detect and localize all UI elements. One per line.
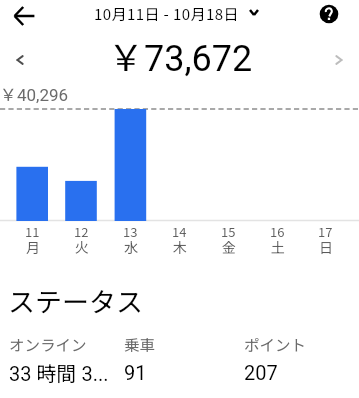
button[interactable]: 10月11日 - 10月18日 bbox=[94, 3, 257, 25]
button[interactable]: 12 bbox=[57, 222, 105, 261]
staticText: 14 bbox=[172, 222, 187, 241]
staticText: 10月11日 - 10月18日 bbox=[94, 3, 239, 25]
staticText: 91 bbox=[124, 361, 147, 384]
staticText: 33 時間 3... bbox=[9, 358, 109, 387]
staticText: 207 bbox=[244, 361, 278, 384]
staticText: 日 bbox=[319, 237, 333, 257]
staticText: ステータス bbox=[8, 281, 143, 320]
button[interactable]: オンライン bbox=[9, 333, 124, 390]
button[interactable]: Back bbox=[4, 0, 44, 36]
staticText: 土 bbox=[271, 237, 285, 257]
staticText: ￥40,296 bbox=[0, 81, 69, 106]
button[interactable]: ポイント bbox=[244, 333, 307, 384]
staticText: 月 bbox=[26, 237, 40, 257]
staticText: 16 bbox=[270, 222, 285, 241]
staticText: 金 bbox=[222, 237, 236, 257]
staticText: 15 bbox=[221, 222, 236, 241]
button[interactable]: 11 bbox=[8, 222, 56, 261]
staticText: オンライン bbox=[9, 333, 87, 355]
staticText: 12 bbox=[74, 222, 89, 241]
button[interactable]: 14 bbox=[155, 222, 203, 261]
staticText: 11 bbox=[25, 222, 40, 241]
staticText: ￥73,672 bbox=[108, 29, 253, 81]
button[interactable]: Previous week bbox=[0, 40, 40, 80]
button[interactable]: 16 bbox=[253, 222, 301, 261]
staticText: 木 bbox=[173, 237, 187, 257]
staticText: 水 bbox=[124, 237, 138, 257]
staticText: 乗車 bbox=[124, 333, 156, 355]
staticText: ポイント bbox=[244, 333, 307, 355]
button[interactable]: 15 bbox=[204, 222, 252, 261]
button[interactable]: 乗車 bbox=[124, 333, 244, 384]
button[interactable]: 17 bbox=[301, 222, 349, 261]
button[interactable]: Next week bbox=[319, 40, 359, 80]
button[interactable]: Help bbox=[315, 0, 343, 28]
staticText: 17 bbox=[318, 222, 333, 241]
staticText: 13 bbox=[123, 222, 138, 241]
button[interactable]: 13 bbox=[106, 222, 154, 261]
staticText: 火 bbox=[75, 237, 89, 257]
